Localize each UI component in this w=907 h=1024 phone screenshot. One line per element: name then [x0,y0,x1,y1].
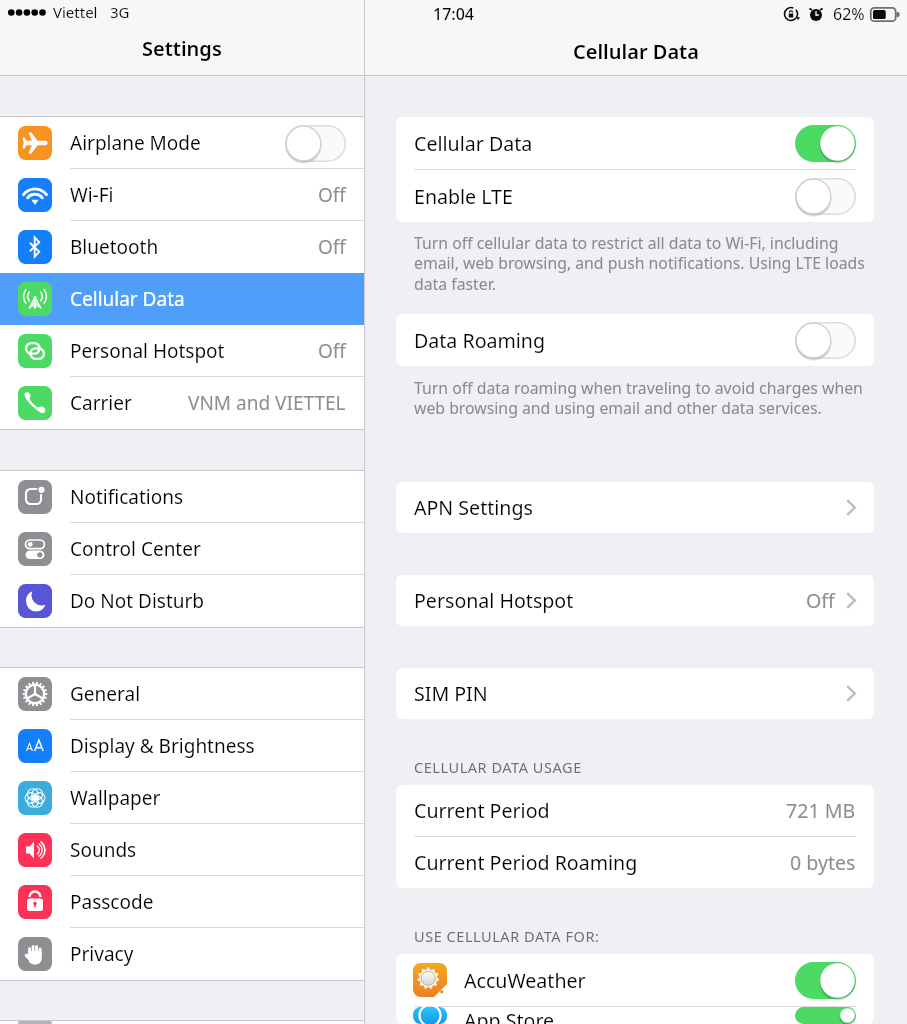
staticText: Passcode [70,889,154,915]
staticText: Data Roaming [414,327,546,354]
button[interactable]: Display & Brightness [0,720,364,772]
button[interactable]: Wallpaper [0,772,364,824]
staticText: Off [318,338,346,364]
staticText: 17:04 [433,3,474,25]
staticText: Airplane Mode [70,130,201,156]
button[interactable]: Cellular Data, on [795,125,856,162]
button[interactable]: Enable LTE, off [795,178,856,215]
button[interactable]: General [0,668,364,720]
button[interactable]: App Store [396,1007,874,1024]
button[interactable]: Notifications [0,471,364,523]
staticText: AccuWeather [464,967,586,994]
button[interactable]: Wi-Fi [0,169,364,221]
button[interactable]: Data Roaming, off [795,322,856,359]
button[interactable]: Airplane Mode [0,117,364,169]
other: Rotation lock [783,6,799,22]
button[interactable]: Current Period Roaming [396,837,874,888]
button[interactable]: Enable LTE [396,170,874,222]
button[interactable]: Control Center [0,523,364,575]
button[interactable]: AccuWeather [396,954,874,1006]
staticText: Wi-Fi [70,182,114,208]
staticText: Do Not Disturb [70,588,205,614]
button[interactable]: Do Not Disturb [0,575,364,627]
staticText: Enable LTE [414,183,513,210]
staticText: Turn off data roaming when traveling to … [414,377,867,419]
staticText: Current Period Roaming [414,849,638,876]
button[interactable]: APN Settings [396,482,874,533]
button[interactable]: AccuWeather, on [795,962,856,999]
staticText: Personal Hotspot [414,587,574,614]
button[interactable]: Current Period [396,785,874,836]
staticText: Carrier [70,390,132,416]
staticText: Wallpaper [70,785,161,811]
staticText: USE CELLULAR DATA FOR: [414,926,600,946]
button[interactable]: Cellular Data [396,117,874,169]
button[interactable]: Data Roaming [396,314,874,366]
staticText: Settings [142,35,222,62]
staticText: Off [318,234,346,260]
staticText: App Store [464,1007,555,1024]
button[interactable]: Personal Hotspot [396,575,874,626]
button[interactable]: SIM PIN [396,668,874,719]
staticText: APN Settings [414,494,533,521]
button[interactable]: Passcode [0,876,364,928]
staticText: VNM and VIETTEL [188,390,346,416]
staticText: 0 bytes [790,849,856,876]
staticText: Viettel [53,2,98,22]
other: Battery 62 percent [870,7,900,22]
staticText: Off [318,182,346,208]
staticText: Privacy [70,941,134,967]
staticText: Control Center [70,536,201,562]
staticText: Off [806,587,835,614]
button[interactable]: iCloud [0,1021,364,1024]
staticText: Personal Hotspot [70,338,225,364]
staticText: 721 MB [786,797,856,824]
staticText: 62% [833,3,865,25]
staticText: Turn off cellular data to restrict all d… [414,232,867,295]
staticText: General [70,681,141,707]
button[interactable]: Personal Hotspot [0,325,364,377]
staticText: Cellular Data [573,38,699,65]
button[interactable]: App Store, on [795,1007,856,1024]
staticText: CELLULAR DATA USAGE [414,757,582,777]
staticText: SIM PIN [414,680,488,707]
button[interactable]: Sounds [0,824,364,876]
button[interactable]: Airplane Mode, off [285,125,346,162]
button[interactable]: Bluetooth [0,221,364,273]
other: Alarm [808,6,824,22]
staticText: Cellular Data [70,286,185,312]
staticText: 3G [110,2,130,22]
staticText: Notifications [70,484,184,510]
staticText: Cellular Data [414,130,533,157]
staticText: Sounds [70,837,137,863]
staticText: Display & Brightness [70,733,255,759]
staticText: Current Period [414,797,550,824]
button[interactable]: Carrier [0,377,364,429]
button[interactable]: Cellular Data [0,273,364,325]
button[interactable]: Privacy [0,928,364,980]
staticText: Bluetooth [70,234,159,260]
